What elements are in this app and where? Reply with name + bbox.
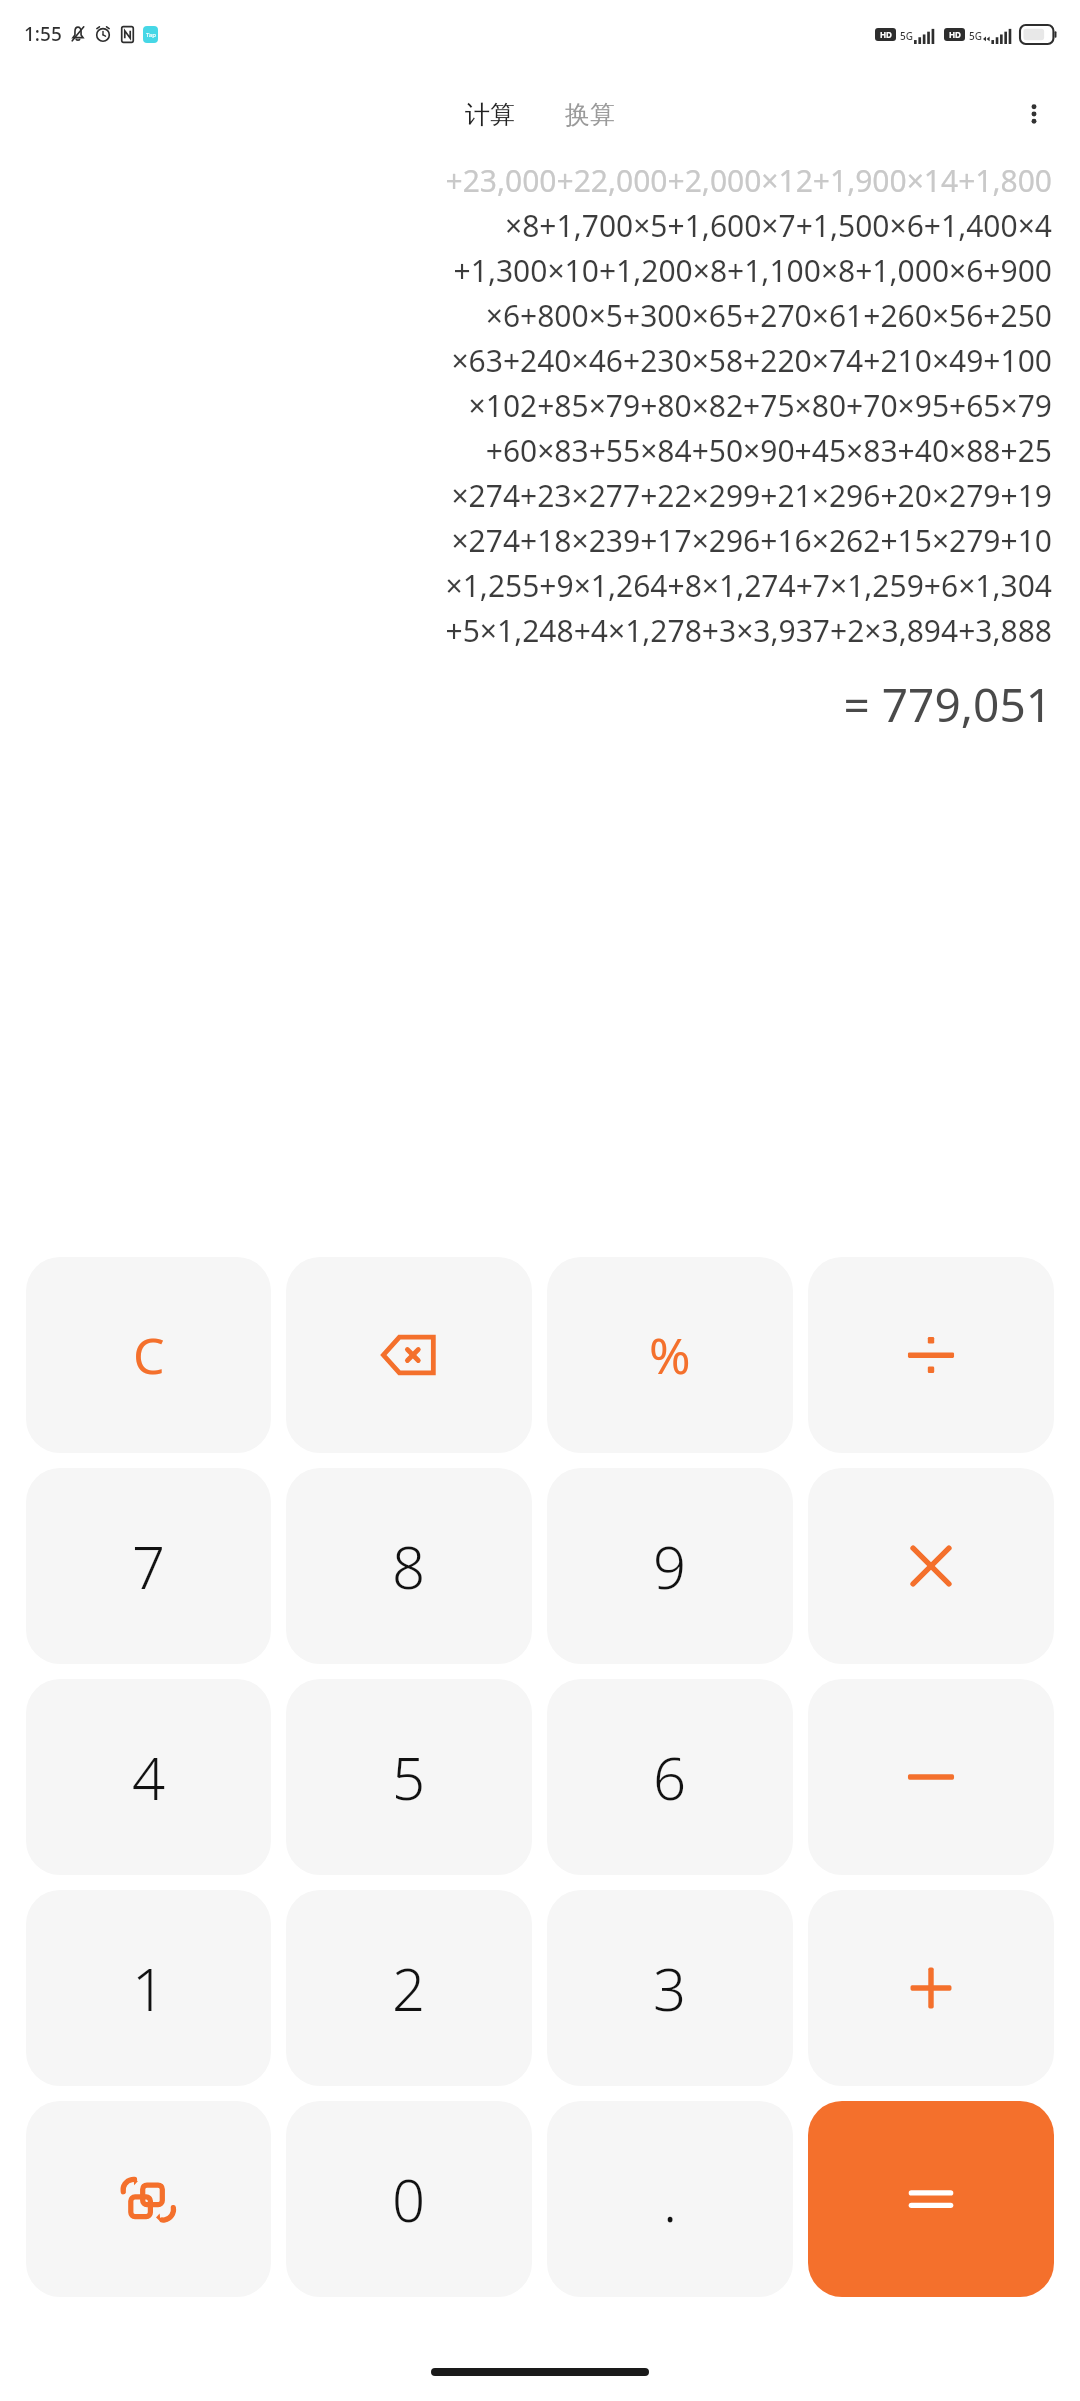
staticText: 5G <box>900 29 913 43</box>
button[interactable]: 5 <box>286 1679 532 1875</box>
staticText: 4 <box>132 1738 166 1817</box>
button[interactable]: Plus <box>808 1890 1054 2086</box>
staticText: 计算 <box>465 99 515 130</box>
staticText: 换算 <box>565 99 615 130</box>
button[interactable]: Multiply <box>808 1468 1054 1664</box>
staticText: 5 <box>392 1738 426 1817</box>
staticText: 8 <box>392 1527 426 1606</box>
button[interactable]: Minus <box>808 1679 1054 1875</box>
staticText: ×8+1,700×5+1,600×7+1,500×6+1,400×4 <box>28 205 1052 246</box>
staticText: +5×1,248+4×1,278+3×3,937+2×3,894+3,888 <box>28 610 1052 651</box>
button[interactable]: More options <box>1010 90 1058 138</box>
button[interactable]: 3 <box>547 1890 793 2086</box>
staticText: 9 <box>653 1527 687 1606</box>
staticText: Tap <box>146 31 156 39</box>
button[interactable]: Convert <box>26 2101 271 2297</box>
button[interactable]: 换算 <box>551 93 629 136</box>
staticText: ×63+240×46+230×58+220×74+210×49+100 <box>28 340 1052 381</box>
staticText: 7 <box>132 1527 166 1606</box>
button[interactable]: C <box>26 1257 271 1453</box>
staticText: ×1,255+9×1,264+8×1,274+7×1,259+6×1,304 <box>28 565 1052 606</box>
staticText: 1 <box>132 1949 166 2028</box>
staticText: ×102+85×79+80×82+75×80+70×95+65×79 <box>28 385 1052 426</box>
button[interactable]: 1 <box>26 1890 271 2086</box>
staticText: 1:55 <box>24 21 62 47</box>
staticText: +1,300×10+1,200×8+1,100×8+1,000×6+900 <box>28 250 1052 291</box>
staticText: 2 <box>392 1949 426 2028</box>
button[interactable]: 8 <box>286 1468 532 1664</box>
staticText: % <box>649 1321 691 1389</box>
staticText: 0 <box>392 2160 426 2239</box>
staticText: ×274+18×239+17×296+16×262+15×279+10 <box>28 520 1052 561</box>
button[interactable]: Equals <box>808 2101 1054 2297</box>
button[interactable]: Divide <box>808 1257 1054 1453</box>
button[interactable]: 计算 <box>451 93 529 136</box>
button[interactable]: . <box>547 2101 793 2297</box>
staticText: +23,000+22,000+2,000×12+1,900×14+1,800 <box>28 160 1052 201</box>
staticText: = 779,051 <box>28 673 1052 736</box>
button[interactable]: 6 <box>547 1679 793 1875</box>
staticText: 3 <box>653 1949 687 2028</box>
button[interactable]: 2 <box>286 1890 532 2086</box>
staticText: ×6+800×5+300×65+270×61+260×56+250 <box>28 295 1052 336</box>
button[interactable]: 7 <box>26 1468 271 1664</box>
staticText: HD <box>880 29 892 40</box>
staticText: . <box>663 2160 678 2239</box>
button[interactable]: Backspace <box>286 1257 532 1453</box>
button[interactable]: 9 <box>547 1468 793 1664</box>
staticText: HD <box>949 29 961 40</box>
staticText: 5G <box>969 29 982 43</box>
staticText: C <box>133 1321 165 1389</box>
staticText: ×274+23×277+22×299+21×296+20×279+19 <box>28 475 1052 516</box>
staticText: +60×83+55×84+50×90+45×83+40×88+25 <box>28 430 1052 471</box>
button[interactable]: 4 <box>26 1679 271 1875</box>
button[interactable]: 0 <box>286 2101 532 2297</box>
staticText: 6 <box>653 1738 687 1817</box>
button[interactable]: % <box>547 1257 793 1453</box>
